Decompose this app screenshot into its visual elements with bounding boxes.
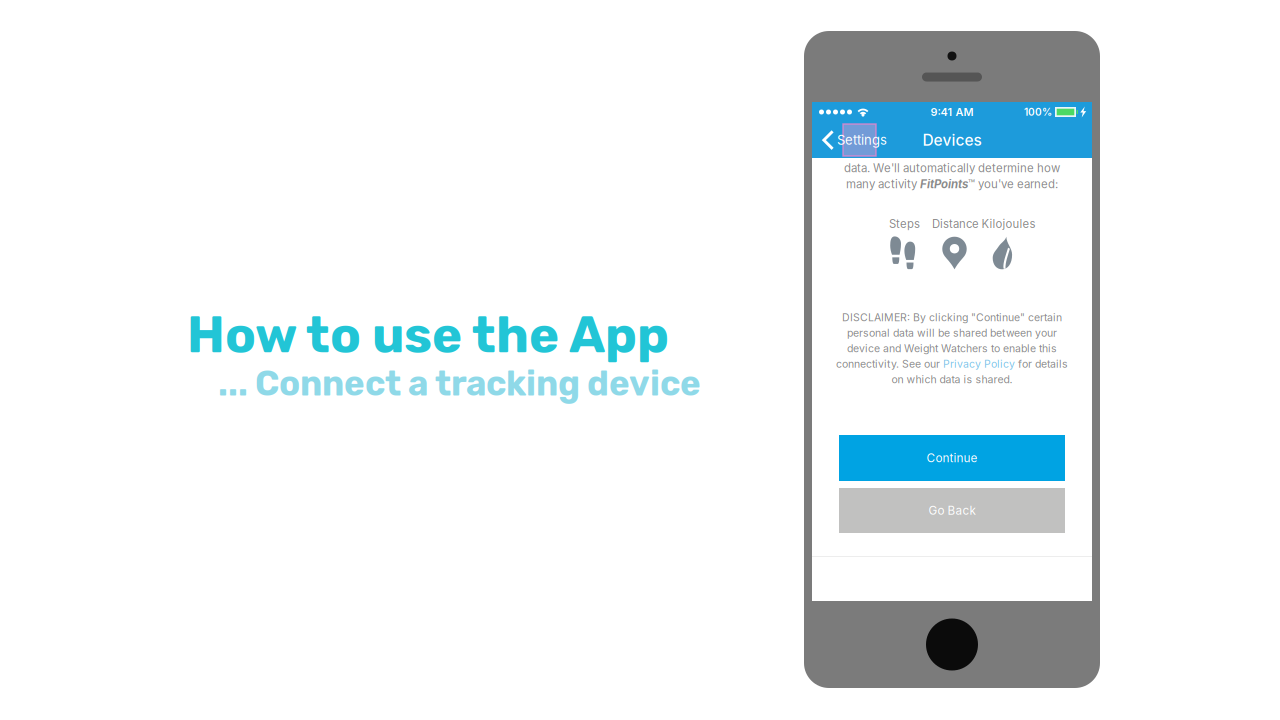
button[interactable]: Settings (812, 122, 895, 158)
staticText: How to use the App (187, 305, 669, 365)
staticText: ... Connect a tracking device (218, 363, 701, 404)
staticText: device and Weight Watchers to enable thi… (847, 342, 1057, 355)
staticText: Devices (922, 131, 981, 149)
staticText: Steps (889, 217, 920, 231)
staticText: Privacy Policy (943, 358, 1015, 370)
staticText: connectivity. See our (836, 358, 943, 370)
staticText: Settings (837, 132, 887, 148)
button[interactable]: Go Back (839, 488, 1065, 533)
staticText: 100% (1024, 106, 1052, 118)
button[interactable]: Continue (839, 435, 1065, 481)
staticText: on which data is shared. (891, 373, 1012, 386)
staticText: many activity FitPoints™ you've earned: (846, 177, 1058, 191)
staticText: Continue (926, 451, 977, 465)
staticText: Kilojoules (981, 217, 1035, 231)
staticText: DISCLAIMER: By clicking "Continue" certa… (842, 311, 1062, 324)
staticText: personal data will be shared between you… (847, 327, 1057, 339)
staticText: data. We'll automatically determine how (844, 161, 1060, 175)
staticText: for details (1015, 358, 1068, 370)
staticText: Go Back (928, 503, 975, 518)
staticText: Distance (932, 217, 979, 231)
staticText: 9:41 AM (930, 105, 973, 119)
